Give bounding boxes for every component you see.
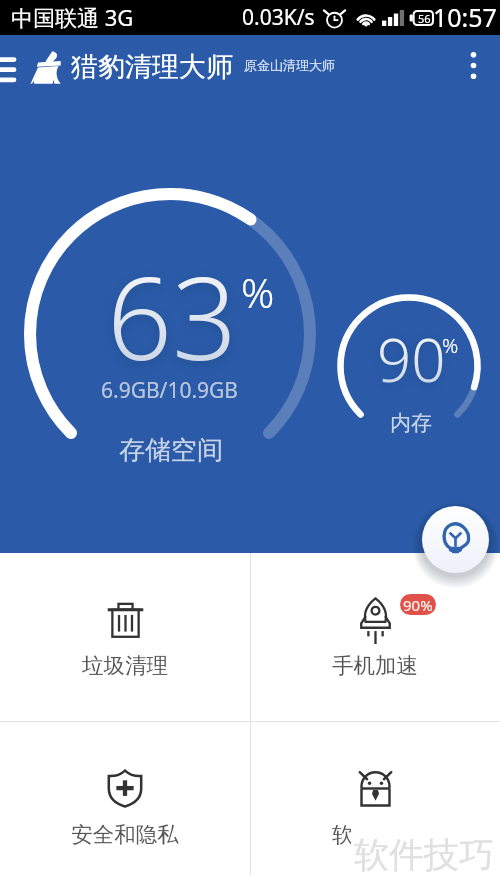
button[interactable]: 安全和隐私 xyxy=(0,722,250,889)
staticText: 90% xyxy=(403,595,433,615)
staticText: 56 xyxy=(418,11,431,26)
staticText: 软件管理 xyxy=(332,821,418,848)
staticText: 10:57 xyxy=(433,0,497,34)
staticText: 0.03K/s xyxy=(242,3,315,32)
staticText: 原金山清理大师 xyxy=(244,57,335,73)
button[interactable]: 垃圾清理 xyxy=(0,553,250,721)
staticText: 垃圾清理 xyxy=(82,652,168,679)
staticText: % xyxy=(241,264,275,320)
staticText: 软件技巧 xyxy=(354,833,494,877)
staticText: 90 xyxy=(377,318,446,400)
button[interactable]: Menu xyxy=(0,40,14,90)
button[interactable]: 手机加速 xyxy=(250,553,500,721)
staticText: 内存 xyxy=(390,410,432,436)
staticText: 存储空间 xyxy=(119,434,223,467)
staticText: 猎豹清理大师 xyxy=(71,50,233,84)
staticText: 安全和隐私 xyxy=(71,821,179,848)
staticText: % xyxy=(442,332,459,359)
staticText: 6.9GB/10.9GB xyxy=(101,376,239,405)
staticText: 63 xyxy=(107,238,238,393)
button[interactable]: Tips xyxy=(422,506,489,573)
staticText: 手机加速 xyxy=(332,652,418,679)
button[interactable]: More options xyxy=(449,41,497,89)
button[interactable]: 软件管理 xyxy=(250,722,500,889)
staticText: 中国联通 3G xyxy=(11,2,134,32)
